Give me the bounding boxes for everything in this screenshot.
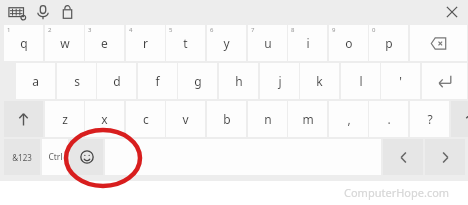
button[interactable]: n <box>248 101 287 137</box>
staticText: ? <box>427 111 433 127</box>
staticText: n <box>264 111 272 127</box>
staticText: ComputerHope.com <box>344 185 450 200</box>
button[interactable]: s <box>57 63 96 99</box>
staticText: z <box>62 111 68 127</box>
staticText: i <box>306 35 310 51</box>
button[interactable]: a <box>16 63 55 99</box>
button[interactable]: g <box>178 63 217 99</box>
staticText: q <box>20 35 28 51</box>
button[interactable]: v <box>166 101 205 137</box>
staticText: m <box>302 111 314 127</box>
staticText: , <box>347 111 351 127</box>
staticText: t <box>183 35 188 51</box>
button[interactable]: 7 <box>248 25 287 61</box>
button[interactable]: m <box>288 101 327 137</box>
staticText: 6 <box>210 26 214 34</box>
staticText: g <box>194 73 202 89</box>
staticText: f <box>155 73 160 89</box>
button[interactable]: f <box>138 63 177 99</box>
button[interactable]: 3 <box>85 25 124 61</box>
button[interactable]: 9 <box>329 25 368 61</box>
button[interactable]: z <box>45 101 84 137</box>
staticText: l <box>359 73 363 89</box>
button[interactable]: Ctrl <box>42 139 68 175</box>
staticText: p <box>385 35 393 51</box>
button[interactable]: 4 <box>126 25 165 61</box>
staticText: 5 <box>169 26 173 34</box>
button[interactable]: Shift <box>4 101 43 137</box>
button[interactable]: 6 <box>207 25 246 61</box>
button[interactable]: Emoji <box>70 139 103 175</box>
staticText: w <box>60 35 70 51</box>
staticText: &123 <box>12 152 32 163</box>
button[interactable]: Shift <box>451 101 468 137</box>
button[interactable]: Keyboard settings <box>8 4 26 21</box>
staticText: 2 <box>48 26 52 34</box>
button[interactable]: 5 <box>166 25 205 61</box>
staticText: d <box>113 73 121 89</box>
button[interactable]: Microphone <box>35 4 51 21</box>
staticText: 4 <box>129 26 133 34</box>
button[interactable]: b <box>207 101 246 137</box>
staticText: 0 <box>372 26 376 34</box>
button[interactable]: ? <box>410 101 449 137</box>
staticText: b <box>223 111 231 127</box>
staticText: h <box>235 73 243 89</box>
button[interactable]: c <box>126 101 165 137</box>
button[interactable]: Backspace <box>410 25 467 61</box>
staticText: 8 <box>291 26 295 34</box>
staticText: k <box>316 73 323 89</box>
button[interactable]: Enter <box>422 63 467 99</box>
staticText: . <box>387 111 391 127</box>
button[interactable]: k <box>300 63 339 99</box>
staticText: ' <box>399 73 402 89</box>
button[interactable]: Clipboard <box>60 4 75 21</box>
button[interactable]: Right <box>425 139 465 175</box>
button[interactable]: , <box>329 101 368 137</box>
button[interactable]: Close <box>444 4 460 20</box>
button[interactable]: 8 <box>288 25 327 61</box>
button[interactable]: &123 <box>4 139 40 175</box>
button[interactable]: 1 <box>4 25 43 61</box>
button[interactable]: ' <box>381 63 420 99</box>
staticText: c <box>143 111 149 127</box>
button[interactable]: Space <box>105 139 381 175</box>
button[interactable]: Left <box>383 139 423 175</box>
button[interactable]: h <box>219 63 258 99</box>
staticText: 7 <box>251 26 255 34</box>
button[interactable]: 2 <box>45 25 84 61</box>
button[interactable]: d <box>97 63 136 99</box>
staticText: e <box>101 35 108 51</box>
staticText: u <box>264 35 272 51</box>
staticText: a <box>32 73 39 89</box>
button[interactable]: x <box>85 101 124 137</box>
staticText: 9 <box>332 26 336 34</box>
staticText: 3 <box>88 26 92 34</box>
button[interactable]: . <box>369 101 408 137</box>
staticText: y <box>223 35 230 51</box>
staticText: o <box>345 35 353 51</box>
button[interactable]: 0 <box>369 25 408 61</box>
staticText: s <box>74 73 80 89</box>
staticText: Ctrl <box>48 151 63 163</box>
button[interactable]: j <box>260 63 299 99</box>
staticText: j <box>278 73 282 89</box>
staticText: x <box>101 111 108 127</box>
staticText: r <box>143 35 148 51</box>
staticText: v <box>182 111 189 127</box>
button[interactable]: l <box>341 63 380 99</box>
staticText: 1 <box>7 26 11 34</box>
